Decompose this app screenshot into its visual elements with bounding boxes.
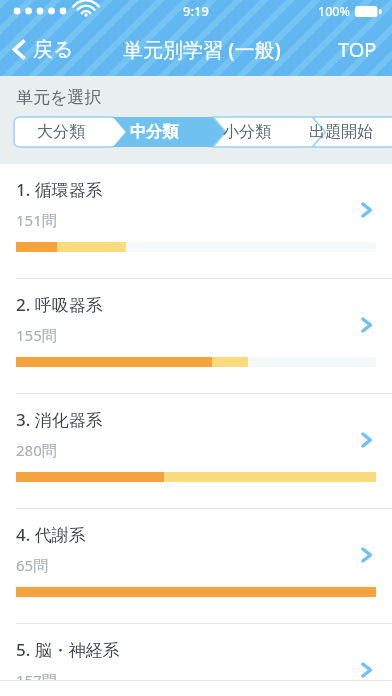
staticText: 小分類 [223, 122, 271, 142]
button[interactable]: 5. 脳・神経系 [0, 624, 392, 681]
staticText: 5. 脳・神経系 [16, 638, 120, 661]
staticText: 157問 [16, 670, 57, 680]
button[interactable]: 1. 循環器系 [0, 164, 392, 279]
button[interactable]: 2. 呼吸器系 [0, 279, 392, 394]
button[interactable]: 4. 代謝系 [0, 509, 392, 624]
staticText: 151問 [16, 210, 57, 230]
staticText: 中分類 [130, 122, 178, 142]
button[interactable]: 詳細を開く [356, 545, 376, 565]
button[interactable]: 詳細を開く [356, 430, 376, 450]
staticText: 戻る [33, 37, 74, 62]
staticText: TOP [338, 36, 377, 63]
button[interactable]: 詳細を開く [356, 200, 376, 220]
button[interactable]: TOP [323, 22, 392, 76]
staticText: 4. 代謝系 [16, 523, 86, 546]
button[interactable]: 中分類 [107, 117, 200, 147]
button[interactable]: 詳細を開く [356, 660, 376, 680]
staticText: 大分類 [37, 122, 85, 142]
staticText: 280問 [16, 440, 57, 460]
button[interactable]: 小分類 [200, 117, 294, 147]
staticText: 65問 [16, 555, 49, 575]
button[interactable]: 詳細を開く [356, 315, 376, 335]
button[interactable]: 出題開始 [294, 117, 388, 147]
staticText: 単元別学習 (一般) [123, 36, 281, 63]
staticText: 単元を選択 [16, 87, 102, 108]
staticText: 1. 循環器系 [16, 178, 103, 201]
staticText: 155問 [16, 325, 57, 345]
button[interactable]: 大分類 [14, 117, 107, 147]
button[interactable]: 3. 消化器系 [0, 394, 392, 509]
staticText: 出題開始 [309, 122, 373, 142]
staticText: 100% [318, 3, 350, 20]
staticText: 9:19 [183, 2, 209, 20]
staticText: 2. 呼吸器系 [16, 293, 103, 316]
staticText: 3. 消化器系 [16, 408, 103, 431]
button[interactable]: 戻る [0, 22, 82, 76]
